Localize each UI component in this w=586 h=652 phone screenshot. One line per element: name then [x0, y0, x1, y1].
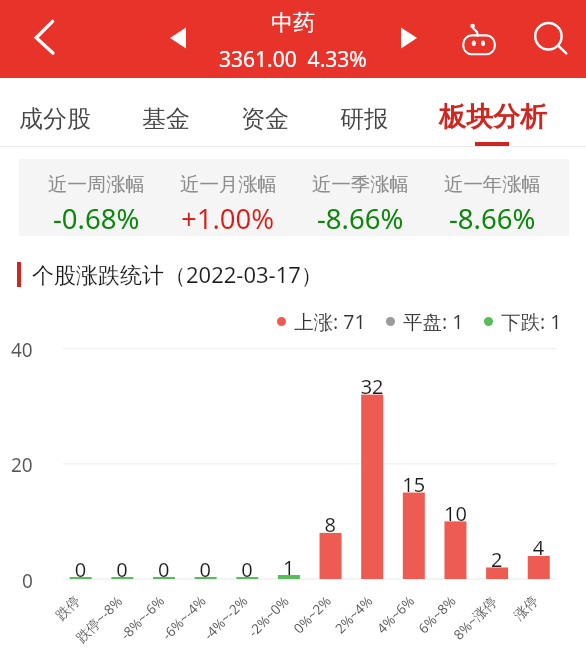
staticText: 基金 — [142, 104, 190, 134]
button[interactable]: 上涨: 71 — [277, 308, 366, 335]
button[interactable]: 成分股 — [19, 104, 91, 134]
button[interactable]: 资金 — [241, 104, 289, 134]
button[interactable]: 近一年涨幅 — [426, 172, 558, 237]
button[interactable]: 近一周涨幅 — [30, 172, 162, 237]
staticText: 个股涨跌统计（2022-03-17） — [32, 259, 323, 289]
staticText: -8.66% — [449, 200, 536, 237]
staticText: 上涨: 71 — [294, 308, 366, 335]
button[interactable]: 研报 — [340, 104, 388, 134]
button[interactable]: 近一季涨幅 — [294, 172, 426, 237]
button[interactable]: 板块分析 — [439, 100, 547, 134]
staticText: 下跌: 1 — [501, 308, 562, 335]
button[interactable]: Previous sector — [162, 22, 194, 54]
button[interactable]: 平盘: 1 — [386, 308, 464, 335]
button[interactable]: Search — [526, 14, 574, 62]
staticText: 资金 — [241, 104, 289, 134]
staticText: 3361.00 4.33% — [219, 45, 367, 74]
staticText: 平盘: 1 — [403, 308, 464, 335]
staticText: +1.00% — [181, 200, 275, 237]
button[interactable]: 基金 — [142, 104, 190, 134]
staticText: 中药 — [271, 9, 315, 37]
button[interactable]: Back — [14, 12, 62, 60]
staticText: 近一月涨幅 — [180, 172, 277, 196]
staticText: 近一季涨幅 — [312, 172, 409, 196]
staticText: 板块分析 — [439, 100, 547, 134]
button[interactable]: 近一月涨幅 — [162, 172, 294, 237]
staticText: -8.66% — [317, 200, 404, 237]
button[interactable]: 下跌: 1 — [484, 308, 562, 335]
staticText: -0.68% — [53, 200, 140, 237]
button[interactable]: Next sector — [393, 22, 425, 54]
staticText: 成分股 — [19, 104, 91, 134]
button[interactable]: AI assistant — [454, 14, 506, 66]
staticText: 近一周涨幅 — [48, 172, 145, 196]
staticText: 研报 — [340, 104, 388, 134]
staticText: 近一年涨幅 — [444, 172, 541, 196]
